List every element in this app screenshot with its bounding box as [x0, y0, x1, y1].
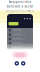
staticText: designed for makers	[6, 9, 34, 13]
staticText: Every great idea	[8, 0, 31, 4]
button[interactable]: Previous	[15, 61, 19, 66]
button[interactable]: Next	[21, 61, 25, 66]
staticText: starts with a sketch	[6, 5, 33, 8]
